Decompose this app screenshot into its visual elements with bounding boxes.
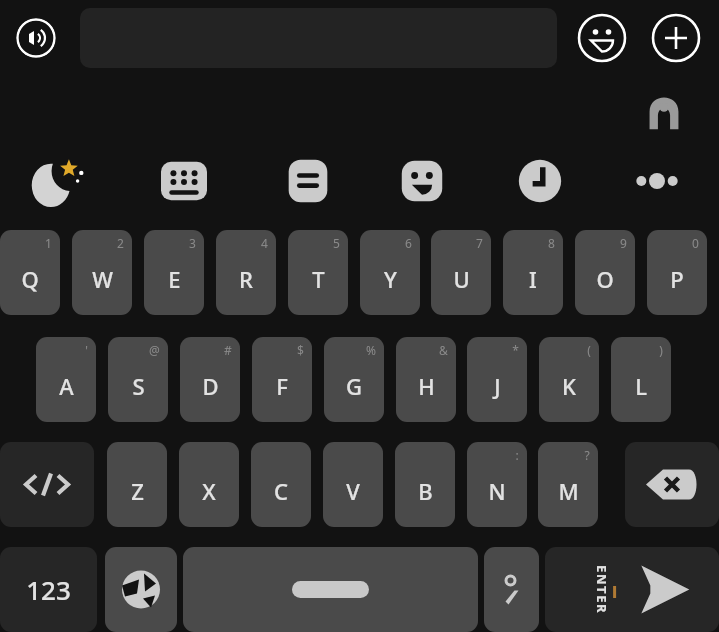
staticText: $ xyxy=(297,342,304,358)
button[interactable]: B xyxy=(395,442,455,527)
staticText: W xyxy=(92,264,113,294)
staticText: H xyxy=(418,371,435,401)
staticText: Q xyxy=(21,264,39,294)
staticText: K xyxy=(562,371,576,401)
staticText: 9 xyxy=(620,235,627,251)
staticText: J xyxy=(494,371,501,401)
button[interactable]: V xyxy=(323,442,383,527)
button[interactable]: : xyxy=(467,442,527,527)
staticText: U xyxy=(453,264,470,294)
staticText: M xyxy=(558,476,579,506)
staticText: 7 xyxy=(476,235,483,251)
staticText: F xyxy=(276,371,288,401)
button[interactable]: 123 xyxy=(0,547,97,632)
staticText: X xyxy=(202,476,216,506)
button[interactable]: 2 xyxy=(72,230,132,315)
staticText: V xyxy=(346,476,360,506)
staticText: P xyxy=(670,264,684,294)
button[interactable]: Change language xyxy=(105,547,177,632)
staticText: 2 xyxy=(117,235,124,251)
staticText: A xyxy=(59,371,74,401)
staticText: G xyxy=(346,371,362,401)
staticText: S xyxy=(132,371,145,401)
button[interactable]: Stickers xyxy=(399,158,445,204)
staticText: ) xyxy=(659,342,663,358)
staticText: E xyxy=(168,264,181,294)
staticText: # xyxy=(224,342,232,358)
staticText: ? xyxy=(584,447,590,463)
staticText: 6 xyxy=(405,235,412,251)
staticText: 3 xyxy=(189,235,196,251)
staticText: L xyxy=(635,371,647,401)
button[interactable]: Emoji xyxy=(577,13,627,63)
staticText: 4 xyxy=(261,235,268,251)
button[interactable]: Comma xyxy=(484,547,539,632)
staticText: 1 xyxy=(45,235,52,251)
button[interactable]: Voice input xyxy=(16,18,56,58)
staticText: Z xyxy=(131,476,144,506)
staticText: & xyxy=(439,342,448,358)
staticText: 123 xyxy=(26,572,71,607)
button[interactable]: % xyxy=(324,337,384,422)
button[interactable]: Backspace xyxy=(625,442,719,527)
button[interactable]: * xyxy=(467,337,527,422)
button[interactable]: 9 xyxy=(575,230,635,315)
button[interactable]: ( xyxy=(539,337,599,422)
staticText: N xyxy=(488,476,506,506)
button[interactable]: Add attachment xyxy=(651,13,701,63)
button[interactable]: ? xyxy=(538,442,598,527)
button[interactable]: $ xyxy=(252,337,312,422)
staticText: ' xyxy=(85,342,88,358)
staticText: C xyxy=(274,476,288,506)
staticText: % xyxy=(366,342,376,358)
button[interactable]: 4 xyxy=(216,230,276,315)
staticText: * xyxy=(512,342,519,358)
button[interactable]: C xyxy=(251,442,311,527)
staticText: I xyxy=(529,264,537,294)
button[interactable]: Symbols xyxy=(0,442,94,527)
button[interactable]: Send xyxy=(545,547,719,632)
button[interactable]: @ xyxy=(108,337,168,422)
staticText: R xyxy=(239,264,253,294)
staticText: : xyxy=(515,447,519,463)
button[interactable]: X xyxy=(179,442,239,527)
staticText: ENTER xyxy=(593,565,611,615)
button[interactable]: Z xyxy=(107,442,167,527)
button[interactable]: Text shortcuts xyxy=(285,158,331,204)
button[interactable]: 0 xyxy=(647,230,707,315)
button[interactable]: More options xyxy=(629,158,685,204)
button[interactable]: 1 xyxy=(0,230,60,315)
button[interactable]: # xyxy=(180,337,240,422)
button[interactable]: ) xyxy=(611,337,671,422)
staticText: 8 xyxy=(548,235,555,251)
staticText: @ xyxy=(149,342,160,358)
button[interactable]: 6 xyxy=(360,230,420,315)
button[interactable]: 8 xyxy=(503,230,563,315)
staticText: Y xyxy=(384,264,397,294)
staticText: ( xyxy=(587,342,591,358)
staticText: D xyxy=(202,371,219,401)
button[interactable]: Recent xyxy=(517,158,563,204)
staticText: T xyxy=(312,264,325,294)
button[interactable]: Night mode xyxy=(28,150,90,212)
button[interactable]: 5 xyxy=(288,230,348,315)
staticText: 0 xyxy=(692,235,699,251)
button[interactable]: ' xyxy=(36,337,96,422)
button[interactable]: Assistant xyxy=(645,92,683,130)
button[interactable]: 3 xyxy=(144,230,204,315)
button[interactable]: Keyboard xyxy=(161,158,207,204)
button[interactable]: 7 xyxy=(431,230,491,315)
staticText: B xyxy=(418,476,433,506)
staticText: O xyxy=(596,264,614,294)
button[interactable]: Space xyxy=(183,547,478,632)
button[interactable]: & xyxy=(396,337,456,422)
staticText: 5 xyxy=(333,235,340,251)
